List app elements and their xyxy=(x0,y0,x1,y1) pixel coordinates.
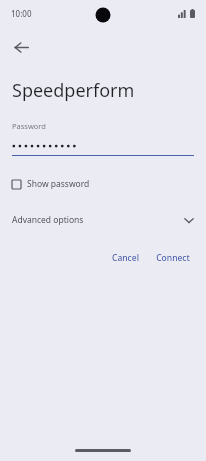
button[interactable]: Show password xyxy=(10,175,96,193)
button[interactable] xyxy=(12,138,194,151)
button[interactable]: Cancel xyxy=(106,248,145,268)
staticText: Show password xyxy=(27,178,90,190)
staticText: Cancel xyxy=(112,252,139,264)
button[interactable]: Advanced options xyxy=(0,210,206,230)
staticText: Password xyxy=(12,121,46,131)
staticText: Connect xyxy=(156,252,190,264)
staticText: Speedperform xyxy=(12,78,135,103)
staticText: 10:00 xyxy=(11,8,32,19)
button[interactable]: Connect xyxy=(150,248,196,268)
button[interactable]: Back xyxy=(4,30,38,64)
staticText: Advanced options xyxy=(12,214,184,226)
